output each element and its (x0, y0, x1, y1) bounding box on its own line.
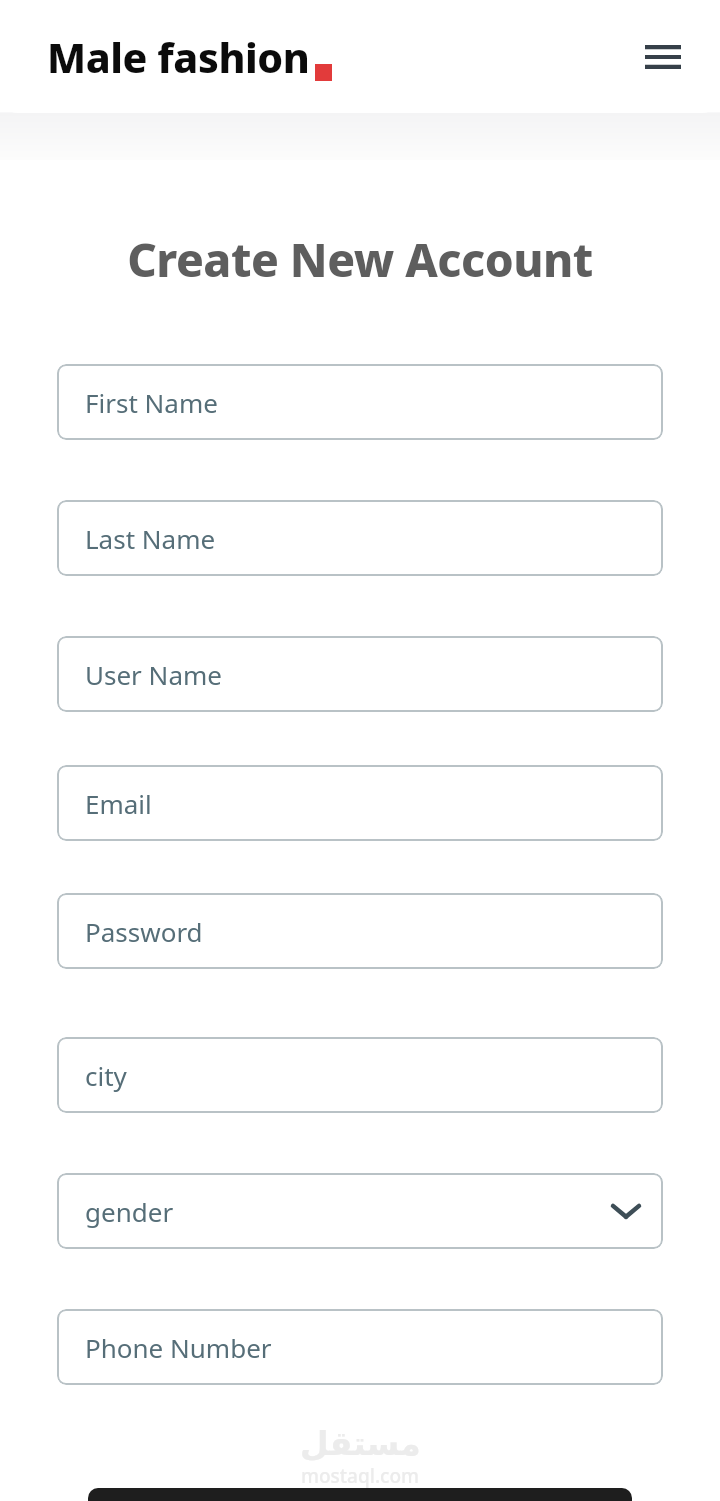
button[interactable]: Email (57, 765, 663, 841)
button[interactable]: Last Name (57, 500, 663, 576)
button[interactable]: Password (57, 893, 663, 969)
button[interactable]: city (57, 1037, 663, 1113)
button[interactable]: User Name (57, 636, 663, 712)
button[interactable]: First Name (57, 364, 663, 440)
staticText: First Name (85, 385, 218, 420)
staticText: Last Name (85, 521, 216, 556)
staticText: Male fashion (47, 29, 310, 85)
staticText: mostaql.com (301, 1463, 419, 1489)
staticText: User Name (85, 657, 222, 692)
staticText: Email (85, 786, 152, 821)
staticText: Create New Account (127, 228, 593, 291)
button[interactable]: Phone Number (57, 1309, 663, 1385)
staticText: gender (85, 1194, 174, 1229)
staticText: Password (85, 914, 203, 949)
staticText: city (85, 1058, 127, 1093)
button[interactable]: gender (57, 1173, 663, 1249)
button[interactable]: Menu (636, 30, 690, 84)
staticText: مستقل (300, 1424, 421, 1462)
staticText: Phone Number (85, 1330, 272, 1365)
